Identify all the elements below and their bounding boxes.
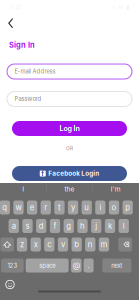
staticText: OR xyxy=(66,146,73,151)
staticText: c xyxy=(47,240,51,249)
button[interactable]: 123 xyxy=(1,258,24,272)
staticText: ıl ≡ ▮ xyxy=(112,3,130,11)
button[interactable]: q xyxy=(0,200,10,214)
staticText: x xyxy=(34,240,38,249)
button[interactable]: n xyxy=(85,237,95,251)
button[interactable]: w xyxy=(13,200,24,214)
button[interactable]: h xyxy=(77,219,88,233)
staticText: l xyxy=(123,221,125,231)
button[interactable]: t xyxy=(54,200,65,214)
button[interactable]: Delete xyxy=(118,237,132,251)
staticText: . xyxy=(88,261,90,270)
button[interactable]: v xyxy=(58,237,68,251)
staticText: z xyxy=(20,240,24,249)
button[interactable]: e xyxy=(27,200,37,214)
button[interactable]: k xyxy=(105,219,115,233)
staticText: q xyxy=(2,203,7,212)
staticText: v xyxy=(61,240,65,249)
staticText: s xyxy=(25,221,29,231)
staticText: Password xyxy=(14,95,41,102)
staticText: o xyxy=(111,203,116,212)
staticText: d xyxy=(39,221,44,231)
button[interactable]: l xyxy=(119,219,129,233)
staticText: m xyxy=(100,240,107,249)
button[interactable]: Shift xyxy=(0,237,14,251)
button[interactable]: g xyxy=(64,219,74,233)
button[interactable]: b xyxy=(71,237,82,251)
button[interactable]: . xyxy=(84,258,94,272)
button[interactable]: a xyxy=(9,219,19,233)
button[interactable]: f xyxy=(50,219,60,233)
staticText: I'm xyxy=(111,185,121,193)
staticText: k xyxy=(108,221,112,231)
staticText: next xyxy=(111,262,122,269)
button[interactable]: i xyxy=(95,200,105,214)
staticText: r xyxy=(44,203,47,212)
button[interactable]: z xyxy=(17,237,27,251)
button[interactable]: j xyxy=(91,219,101,233)
staticText: f xyxy=(41,169,44,178)
staticText: I xyxy=(22,185,24,193)
staticText: j xyxy=(95,221,97,231)
staticText: e xyxy=(30,203,35,212)
staticText: @ xyxy=(73,261,80,270)
staticText: i xyxy=(99,203,101,212)
staticText: w xyxy=(15,203,21,212)
button[interactable]: x xyxy=(30,237,41,251)
button[interactable]: f xyxy=(12,166,127,181)
staticText: 123 xyxy=(7,262,17,269)
button[interactable]: u xyxy=(82,200,92,214)
staticText: p xyxy=(125,203,130,212)
staticText: n xyxy=(88,240,93,249)
button[interactable]: @ xyxy=(71,258,82,272)
staticText: g xyxy=(66,221,71,231)
button[interactable]: d xyxy=(36,219,46,233)
button[interactable]: o xyxy=(109,200,119,214)
staticText: t xyxy=(58,203,61,212)
button[interactable]: space xyxy=(26,258,69,272)
button[interactable]: y xyxy=(68,200,78,214)
staticText: f xyxy=(53,221,56,231)
button[interactable]: s xyxy=(22,219,33,233)
staticText: Facebook Login xyxy=(48,170,99,177)
staticText: h xyxy=(80,221,85,231)
button[interactable]: c xyxy=(44,237,54,251)
button[interactable]: Back xyxy=(3,14,17,32)
staticText: u xyxy=(84,203,89,212)
staticText: Sign In xyxy=(9,40,35,49)
staticText: a xyxy=(12,221,16,231)
button[interactable]: m xyxy=(99,237,109,251)
staticText: E-mail Address xyxy=(14,68,55,75)
button[interactable]: Log In xyxy=(12,121,127,136)
button[interactable]: Emoji keyboard xyxy=(5,279,15,289)
staticText: y xyxy=(71,203,75,212)
staticText: b xyxy=(74,240,79,249)
staticText: the xyxy=(64,185,74,193)
button[interactable]: r xyxy=(41,200,51,214)
staticText: Log In xyxy=(59,124,79,133)
button[interactable]: next xyxy=(102,258,131,272)
staticText: space xyxy=(39,262,55,269)
button[interactable]: p xyxy=(122,200,133,214)
